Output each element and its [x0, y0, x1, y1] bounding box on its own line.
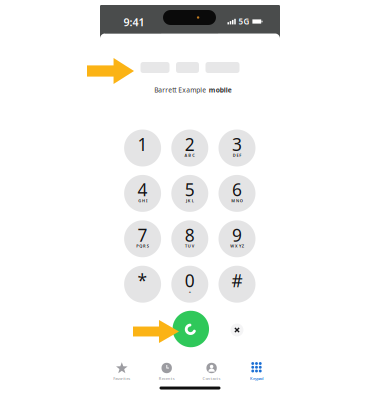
button[interactable]: 1	[124, 129, 161, 166]
button[interactable]: Delete	[218, 311, 255, 348]
staticText: PQRS	[136, 243, 149, 249]
button[interactable]: 6	[218, 175, 255, 212]
button[interactable]: Recents	[147, 361, 187, 383]
staticText: #	[231, 269, 242, 292]
button[interactable]: #	[218, 266, 255, 303]
staticText: Favorites	[113, 376, 130, 381]
staticText: Keypad	[250, 376, 263, 381]
staticText: 0	[185, 269, 195, 292]
staticText: Recents	[159, 376, 175, 381]
staticText: Barrett Example	[154, 85, 206, 94]
staticText: 1	[138, 133, 148, 156]
button[interactable]: *	[124, 266, 161, 303]
button[interactable]: 2	[171, 129, 208, 166]
staticText: WXYZ	[230, 243, 244, 249]
staticText: 8	[185, 223, 195, 246]
button[interactable]: Contacts	[192, 361, 232, 383]
staticText: 4	[138, 178, 148, 201]
staticText: 3	[232, 133, 242, 156]
staticText: *	[138, 269, 148, 292]
staticText: 5	[185, 178, 195, 201]
staticText: 9:41	[123, 15, 144, 29]
staticText: 2	[185, 133, 195, 156]
button[interactable]: 9	[218, 220, 255, 257]
staticText: mobile	[209, 85, 232, 94]
staticText: Contacts	[203, 376, 221, 381]
button[interactable]: 7	[124, 220, 161, 257]
staticText: 5G	[239, 16, 250, 27]
button[interactable]: Call	[172, 310, 209, 347]
staticText: 7	[138, 223, 148, 246]
staticText: TUV	[185, 243, 195, 249]
button[interactable]: 3	[218, 129, 255, 166]
staticText: 9	[232, 223, 242, 246]
button[interactable]: 4	[124, 175, 161, 212]
button[interactable]: 5	[171, 175, 208, 212]
staticText: DEF	[233, 152, 241, 158]
button[interactable]: 8	[171, 220, 208, 257]
button[interactable]: Favorites	[102, 361, 142, 383]
button[interactable]: Keypad	[236, 361, 276, 383]
button[interactable]: 0	[171, 266, 208, 303]
staticText: GHI	[138, 198, 147, 203]
staticText: MNO	[231, 198, 243, 203]
staticText: JKL	[186, 198, 194, 203]
staticText: +	[189, 289, 191, 294]
staticText: 6	[232, 178, 242, 201]
staticText: ABC	[184, 152, 195, 158]
